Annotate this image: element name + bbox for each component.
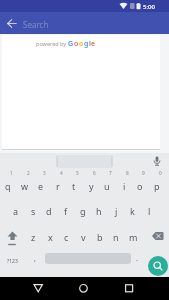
staticText: g bbox=[84, 39, 89, 49]
staticText: j bbox=[115, 205, 118, 217]
staticText: 0 bbox=[159, 170, 162, 176]
staticText: 6 bbox=[93, 170, 96, 176]
staticText: 2 bbox=[27, 170, 30, 176]
staticText: q bbox=[5, 180, 11, 192]
button[interactable]: f bbox=[58, 201, 74, 221]
button[interactable]: j bbox=[108, 201, 124, 221]
button[interactable]: z bbox=[25, 227, 41, 247]
staticText: d bbox=[46, 205, 52, 217]
staticText: 7 bbox=[109, 170, 112, 176]
staticText: t bbox=[72, 180, 76, 192]
staticText: c bbox=[64, 231, 69, 243]
staticText: h bbox=[96, 205, 102, 217]
staticText: y bbox=[89, 180, 94, 192]
staticText: o bbox=[79, 39, 84, 49]
staticText: 5 bbox=[76, 170, 79, 176]
button[interactable]: v bbox=[75, 227, 91, 247]
button[interactable]: k bbox=[124, 201, 140, 221]
button[interactable] bbox=[57, 277, 113, 300]
button[interactable]: . bbox=[129, 249, 145, 269]
staticText: a bbox=[13, 205, 19, 217]
staticText: o bbox=[74, 39, 79, 49]
button[interactable]: x bbox=[42, 227, 58, 247]
button[interactable]: q bbox=[0, 176, 16, 196]
button[interactable]: w bbox=[17, 176, 33, 196]
button[interactable]: Search bbox=[0, 12, 169, 34]
button[interactable]: g bbox=[75, 201, 91, 221]
button[interactable]: h bbox=[91, 201, 107, 221]
button[interactable]: l bbox=[141, 201, 157, 221]
staticText: g bbox=[80, 205, 86, 217]
staticText: 3 bbox=[43, 170, 46, 176]
staticText: b bbox=[97, 231, 103, 243]
staticText: w bbox=[21, 180, 29, 192]
staticText: v bbox=[81, 231, 86, 243]
button[interactable]: t bbox=[66, 176, 82, 196]
staticText: 4 bbox=[60, 170, 63, 176]
staticText: n bbox=[113, 231, 119, 243]
button[interactable]: o bbox=[132, 176, 148, 196]
button[interactable]: u bbox=[99, 176, 115, 196]
button[interactable]: d bbox=[41, 201, 57, 221]
staticText: o bbox=[137, 180, 143, 192]
staticText: l bbox=[89, 39, 91, 49]
staticText: p bbox=[154, 180, 160, 192]
button[interactable]: r bbox=[50, 176, 66, 196]
button[interactable]: a bbox=[8, 201, 24, 221]
staticText: l bbox=[148, 205, 151, 217]
staticText: G bbox=[68, 39, 74, 49]
staticText: 1 bbox=[10, 170, 13, 176]
button[interactable]: i bbox=[116, 176, 132, 196]
staticText: ?123 bbox=[7, 258, 18, 265]
staticText: e bbox=[38, 180, 44, 192]
button[interactable]: p bbox=[149, 176, 165, 196]
staticText: k bbox=[130, 205, 135, 217]
button[interactable]: ?123 bbox=[4, 255, 21, 267]
staticText: powered by bbox=[36, 40, 68, 47]
staticText: Search bbox=[23, 19, 49, 30]
staticText: x bbox=[48, 231, 53, 243]
button[interactable]: s bbox=[25, 201, 41, 221]
staticText: 8 bbox=[126, 170, 129, 176]
staticText: i bbox=[123, 180, 126, 192]
button[interactable]: n bbox=[108, 227, 124, 247]
staticText: z bbox=[31, 231, 36, 243]
staticText: s bbox=[31, 205, 36, 217]
staticText: . bbox=[136, 254, 138, 264]
button[interactable]: c bbox=[58, 227, 74, 247]
staticText: 9 bbox=[142, 170, 145, 176]
button[interactable] bbox=[113, 277, 169, 300]
staticText: , bbox=[34, 254, 36, 264]
button[interactable]: b bbox=[92, 227, 108, 247]
staticText: e bbox=[91, 39, 96, 49]
staticText: r bbox=[56, 180, 60, 192]
staticText: u bbox=[104, 180, 110, 192]
button[interactable] bbox=[148, 256, 168, 276]
staticText: f bbox=[64, 205, 68, 217]
button[interactable]: , bbox=[27, 249, 43, 269]
button[interactable] bbox=[0, 277, 57, 300]
staticText: 5:00 bbox=[143, 3, 155, 11]
button[interactable]: e bbox=[33, 176, 49, 196]
button[interactable]: m bbox=[125, 227, 141, 247]
staticText: m bbox=[129, 231, 138, 243]
button[interactable]: y bbox=[83, 176, 99, 196]
